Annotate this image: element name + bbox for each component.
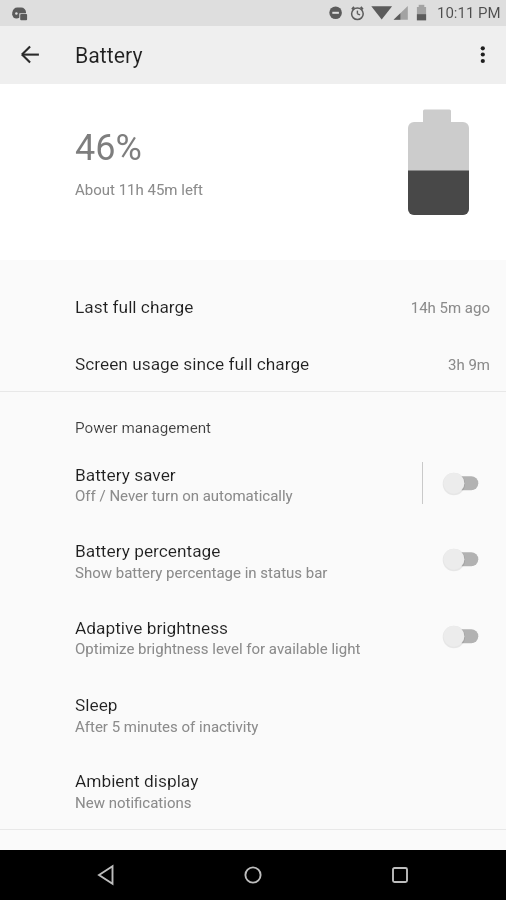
staticText: Adaptive brightness: [75, 618, 229, 638]
button[interactable]: Navigate up: [8, 31, 54, 79]
staticText: Ambient display: [75, 771, 199, 791]
button[interactable]: [0, 598, 506, 675]
button[interactable]: Recent apps: [375, 850, 425, 900]
staticText: Power management: [75, 419, 212, 437]
staticText: 14h 5m ago: [410, 299, 490, 317]
staticText: Screen usage since full charge: [75, 354, 310, 374]
button[interactable]: [0, 445, 506, 522]
staticText: After 5 minutes of inactivity: [75, 718, 259, 736]
staticText: About 11h 45m left: [75, 181, 203, 199]
staticText: New notifications: [75, 794, 192, 812]
button[interactable]: Battery saver: [434, 463, 490, 501]
staticText: Sleep: [75, 695, 118, 715]
button[interactable]: Battery percentage: [434, 539, 490, 577]
button[interactable]: Adaptive brightness: [434, 616, 490, 654]
button[interactable]: [0, 675, 506, 752]
button[interactable]: [0, 341, 506, 397]
staticText: Show battery percentage in status bar: [75, 564, 328, 582]
staticText: 46%: [75, 127, 142, 169]
button[interactable]: Back: [82, 850, 132, 900]
staticText: Battery: [75, 43, 143, 68]
staticText: 3h 9m: [448, 356, 490, 374]
button[interactable]: More options: [460, 31, 504, 79]
button[interactable]: [0, 751, 506, 828]
staticText: 10:11 PM: [437, 4, 501, 22]
staticText: Optimize brightness level for available …: [75, 640, 361, 658]
button[interactable]: Home: [228, 850, 278, 900]
button[interactable]: [0, 521, 506, 598]
button[interactable]: [0, 285, 506, 341]
staticText: Battery percentage: [75, 541, 221, 561]
staticText: Last full charge: [75, 297, 194, 317]
staticText: Battery saver: [75, 465, 176, 485]
staticText: Off / Never turn on automatically: [75, 487, 293, 505]
